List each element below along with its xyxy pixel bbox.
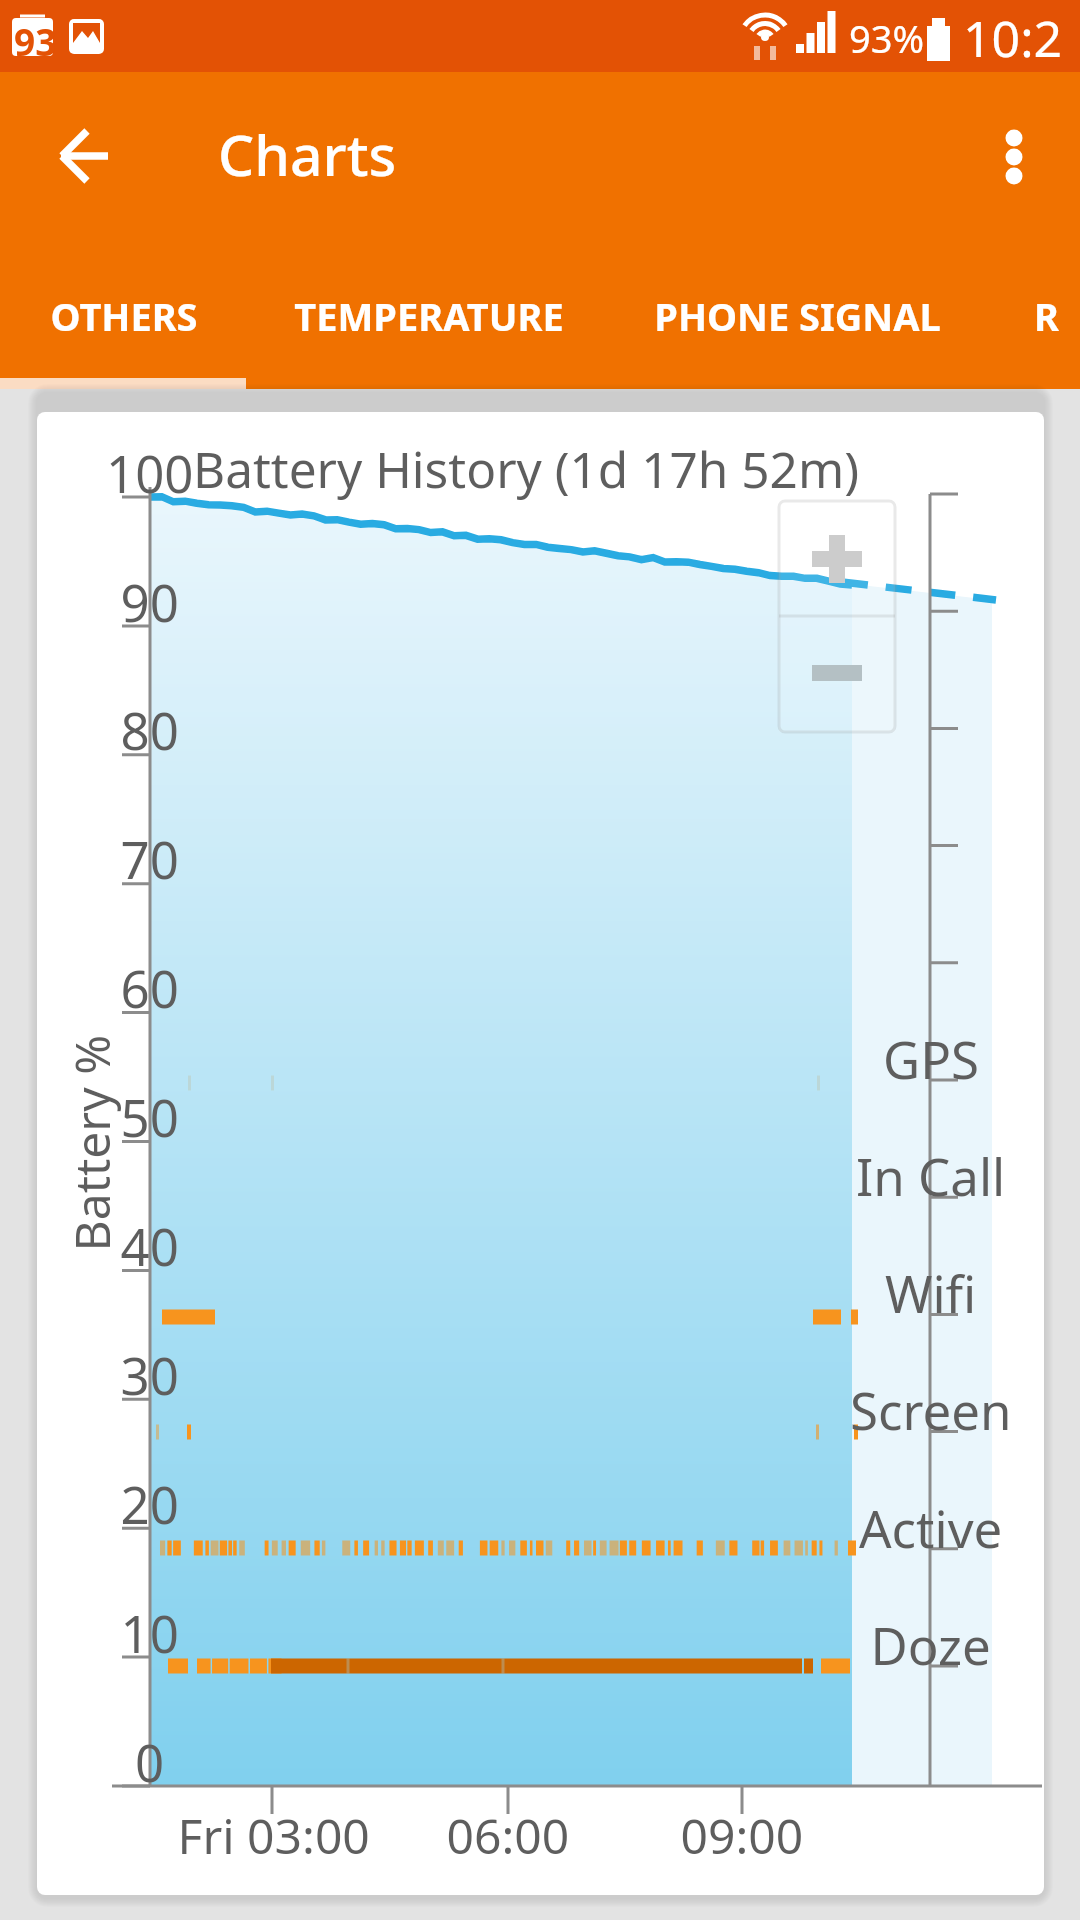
- button[interactable]: RADIO: [985, 258, 1080, 389]
- staticText: 93%: [849, 12, 925, 64]
- button[interactable]: Back: [37, 108, 133, 204]
- staticText: 10:27: [963, 4, 1080, 72]
- staticText: 93: [14, 16, 57, 66]
- button[interactable]: PHONE SIGNAL: [610, 258, 985, 389]
- staticText: Charts: [218, 115, 397, 193]
- button[interactable]: OTHERS: [0, 258, 248, 389]
- button[interactable]: Zoom in: [779, 501, 895, 616]
- button[interactable]: More options: [966, 109, 1062, 205]
- button[interactable]: TEMPERATURE: [248, 258, 610, 389]
- button[interactable]: Zoom out: [779, 616, 895, 732]
- staticText: OTHERS: [50, 290, 198, 342]
- staticText: PHONE SIGNAL: [654, 290, 941, 342]
- staticText: TEMPERATURE: [294, 290, 564, 342]
